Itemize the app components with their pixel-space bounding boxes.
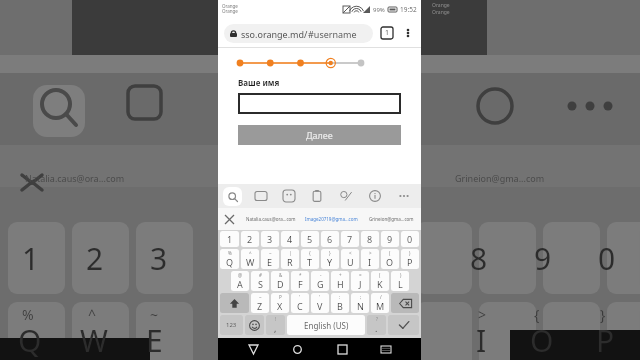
- button[interactable]: Symbols: [220, 315, 243, 335]
- button[interactable]: |: [281, 249, 299, 269]
- button[interactable]: Space: [287, 315, 365, 335]
- staticText: Q: [226, 256, 234, 268]
- button[interactable]: ?: [367, 315, 386, 335]
- staticText: E: [146, 320, 163, 360]
- staticText: 2: [86, 238, 104, 279]
- staticText: 9: [534, 238, 552, 279]
- button[interactable]: Stickers: [280, 187, 298, 205]
- button[interactable]: {: [301, 249, 319, 269]
- staticText: .: [375, 322, 378, 334]
- staticText: 8: [470, 238, 488, 279]
- button[interactable]: %: [220, 249, 239, 269]
- button[interactable]: Hide keyboard: [376, 339, 396, 359]
- button[interactable]: Recents: [332, 339, 352, 359]
- button[interactable]: :: [331, 293, 349, 313]
- button[interactable]: Search: [223, 187, 242, 206]
- staticText: E: [267, 256, 273, 268]
- button[interactable]: Clipboard: [308, 187, 326, 205]
- button[interactable]: 6: [321, 231, 339, 247]
- button[interactable]: 4: [281, 231, 299, 247]
- staticText: T: [307, 256, 313, 268]
- button[interactable]: 0: [401, 231, 419, 247]
- button[interactable]: Info: [366, 187, 384, 205]
- button[interactable]: ;: [351, 293, 369, 313]
- button[interactable]: @: [231, 271, 249, 291]
- button[interactable]: Shift: [220, 293, 249, 313]
- button[interactable]: *: [291, 271, 309, 291]
- staticText: 0: [598, 238, 616, 279]
- button[interactable]: More options: [401, 26, 415, 40]
- button[interactable]: 7: [341, 231, 359, 247]
- staticText: @: [238, 272, 243, 278]
- button[interactable]: ): [391, 271, 409, 291]
- button[interactable]: Tabs: [380, 26, 394, 40]
- button[interactable]: Translate: [337, 187, 355, 205]
- button[interactable]: (: [381, 249, 399, 269]
- button[interactable]: Expand suggestions: [218, 208, 240, 230]
- button[interactable]: ': [311, 293, 329, 313]
- staticText: R: [287, 256, 293, 268]
- button[interactable]: Home: [287, 339, 307, 359]
- staticText: P: [279, 294, 282, 300]
- button[interactable]: #: [251, 271, 269, 291]
- staticText: 4: [287, 233, 293, 245]
- staticText: M: [376, 300, 385, 312]
- staticText: O: [386, 256, 394, 268]
- button[interactable]: Natalia.caus@ora...com: [240, 208, 301, 230]
- staticText: Далее: [306, 129, 333, 141]
- button[interactable]: Emoji: [245, 315, 264, 335]
- button[interactable]: Image20719@gma...com: [301, 208, 361, 230]
- staticText: 1: [22, 238, 40, 279]
- button[interactable]: ~: [251, 293, 269, 313]
- staticText: 6: [327, 233, 333, 245]
- staticText: 3: [267, 233, 273, 245]
- button[interactable]: <: [341, 249, 359, 269]
- button[interactable]: !: [266, 315, 285, 335]
- staticText: I: [476, 320, 487, 360]
- button[interactable]: More: [395, 187, 413, 205]
- staticText: W: [246, 256, 255, 268]
- button[interactable]: /: [371, 293, 389, 313]
- button[interactable]: ): [401, 249, 419, 269]
- staticText: Q: [18, 320, 42, 360]
- staticText: Ваше имя: [238, 77, 280, 88]
- button[interactable]: ^: [241, 249, 259, 269]
- button[interactable]: =: [351, 271, 369, 291]
- button[interactable]: [238, 93, 401, 114]
- staticText: sso.orange.md/: [241, 28, 308, 40]
- button[interactable]: 8: [361, 231, 379, 247]
- button[interactable]: ~: [261, 249, 279, 269]
- staticText: +: [339, 272, 342, 278]
- staticText: ): [400, 272, 402, 278]
- button[interactable]: Enter: [388, 315, 419, 335]
- staticText: 7: [347, 233, 353, 245]
- button[interactable]: Backspace: [391, 293, 419, 313]
- button[interactable]: Grineion@gma...com: [361, 208, 421, 230]
- button[interactable]: sso.orange.md/: [224, 24, 373, 43]
- staticText: N: [357, 300, 364, 312]
- button[interactable]: Далее: [238, 125, 401, 145]
- button[interactable]: P: [271, 293, 289, 313]
- button[interactable]: 1: [220, 231, 239, 247]
- button[interactable]: ': [291, 293, 309, 313]
- button[interactable]: +: [331, 271, 349, 291]
- button[interactable]: (: [371, 271, 389, 291]
- button[interactable]: -: [311, 271, 329, 291]
- button[interactable]: }: [321, 249, 339, 269]
- staticText: ~: [269, 250, 272, 256]
- button[interactable]: Back: [243, 339, 263, 359]
- staticText: B: [337, 300, 343, 312]
- button[interactable]: 5: [301, 231, 319, 247]
- staticText: #username: [308, 28, 357, 40]
- staticText: (: [389, 250, 391, 256]
- staticText: %: [228, 250, 232, 256]
- button[interactable]: GIF: [252, 187, 270, 205]
- button[interactable]: &: [271, 271, 289, 291]
- button[interactable]: 9: [381, 231, 399, 247]
- staticText: Image20719@gma...com: [305, 216, 358, 222]
- staticText: ': [319, 294, 321, 300]
- button[interactable]: 2: [241, 231, 259, 247]
- button[interactable]: 3: [261, 231, 279, 247]
- button[interactable]: >: [361, 249, 379, 269]
- staticText: 5: [307, 233, 313, 245]
